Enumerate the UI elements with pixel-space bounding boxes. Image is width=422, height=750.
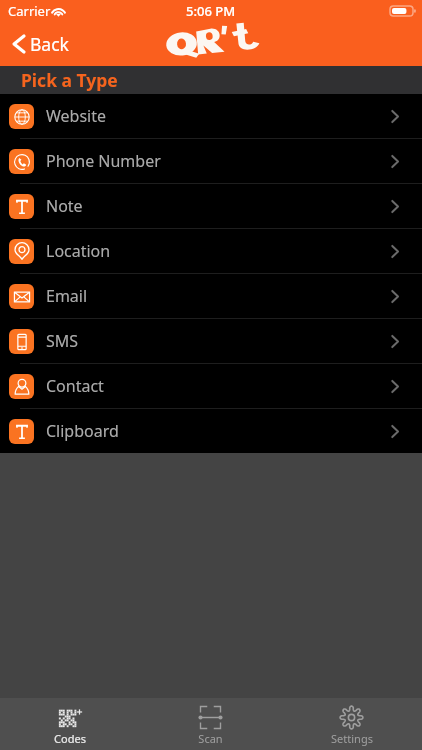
staticText: Website xyxy=(46,105,107,127)
button[interactable]: Codes xyxy=(0,698,140,750)
button[interactable]: Scan xyxy=(140,698,281,750)
staticText: Email xyxy=(46,285,88,307)
button[interactable]: Back xyxy=(0,26,81,62)
staticText: Clipboard xyxy=(46,420,119,442)
staticText: Phone Number xyxy=(46,150,161,172)
staticText: Note xyxy=(46,195,83,217)
staticText: SMS xyxy=(46,330,79,352)
button[interactable]: Settings xyxy=(281,698,422,750)
button[interactable]: Contact xyxy=(0,364,422,408)
staticText: Contact xyxy=(46,375,104,397)
button[interactable]: Location xyxy=(0,229,422,273)
staticText: Location xyxy=(46,240,111,262)
staticText: Back xyxy=(30,32,69,56)
button[interactable]: Website xyxy=(0,94,422,138)
staticText: Settings xyxy=(331,731,373,746)
button[interactable]: Clipboard xyxy=(0,409,422,453)
staticText: Codes xyxy=(54,731,86,746)
button[interactable]: SMS xyxy=(0,319,422,363)
button[interactable]: Note xyxy=(0,184,422,228)
button[interactable]: Phone Number xyxy=(0,139,422,183)
staticText: 5:06 PM xyxy=(186,2,236,20)
staticText: Scan xyxy=(198,731,223,746)
staticText: Pick a Type xyxy=(21,68,118,92)
staticText: Carrier xyxy=(8,2,51,20)
button[interactable]: Email xyxy=(0,274,422,318)
